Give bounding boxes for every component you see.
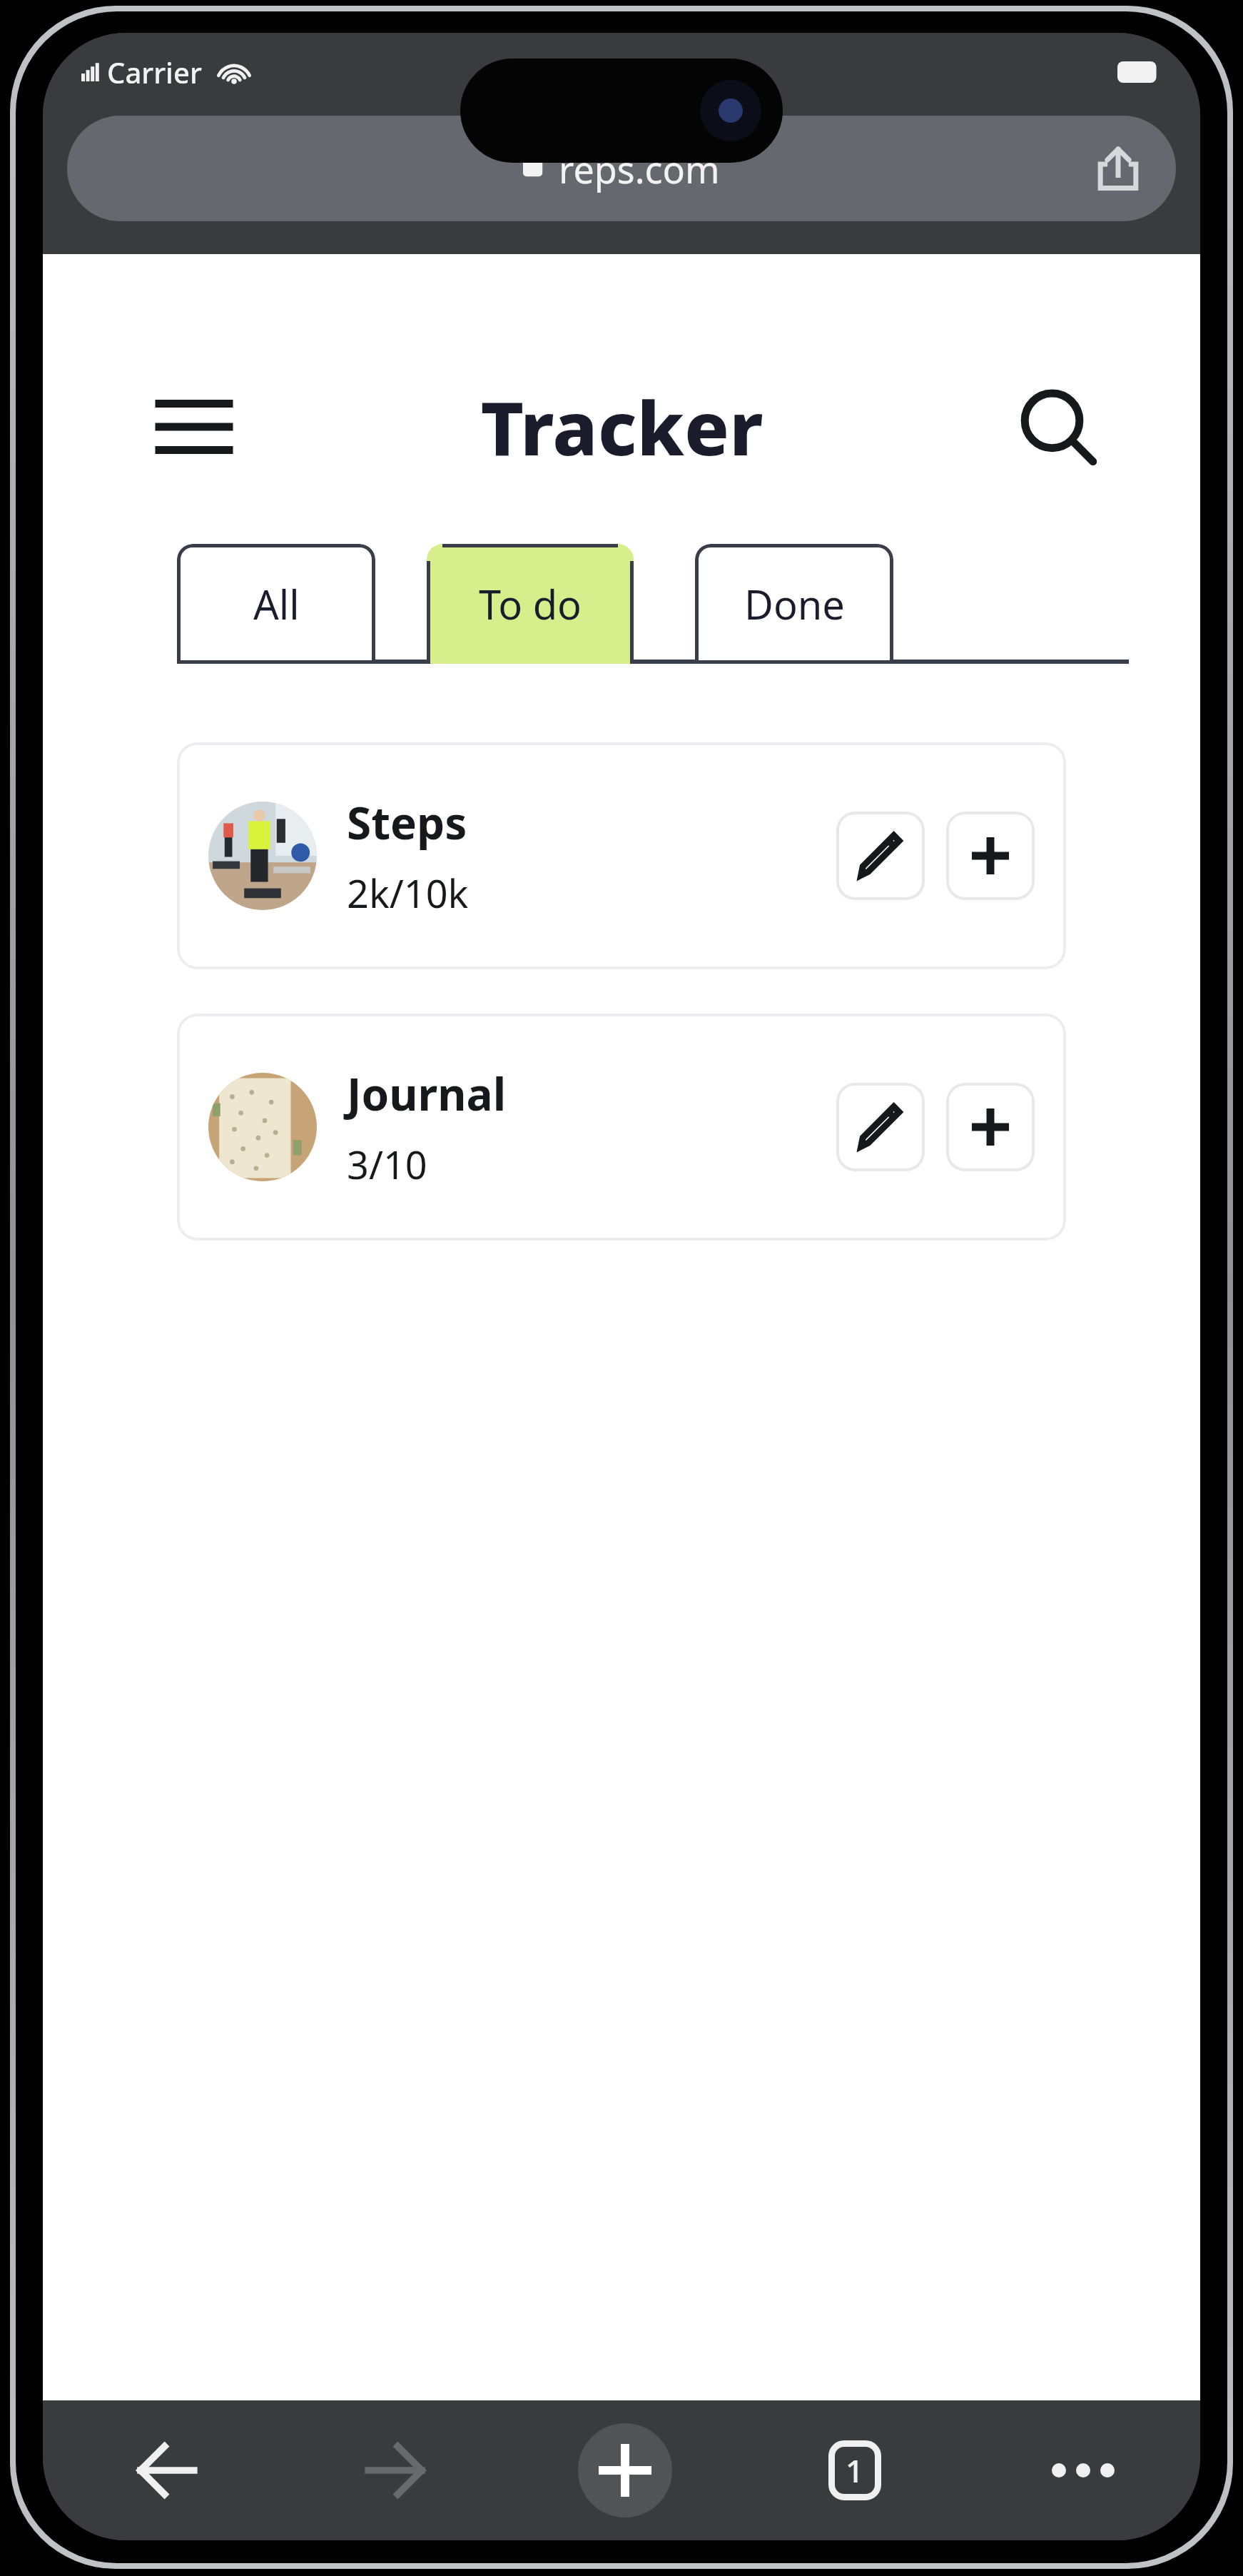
button[interactable]: Menu xyxy=(150,383,238,471)
button[interactable]: Edit xyxy=(836,812,925,900)
staticText: 3/10 xyxy=(347,1138,427,1191)
button[interactable]: Add xyxy=(946,1083,1035,1171)
staticText: reps.com xyxy=(559,143,720,194)
staticText: Done xyxy=(744,577,845,631)
button[interactable]: Share xyxy=(1086,136,1150,201)
staticText: 9:41 xyxy=(654,52,714,93)
button[interactable]: New tab xyxy=(578,2423,672,2517)
staticText: Tracker xyxy=(480,376,763,478)
button[interactable]: More xyxy=(1037,2425,1129,2516)
button[interactable]: All xyxy=(177,544,375,664)
staticText: 1 xyxy=(846,2449,864,2492)
staticText: To do xyxy=(479,577,582,631)
staticText: 2k/10k xyxy=(347,867,469,919)
staticText: All xyxy=(253,577,300,631)
button[interactable]: Done xyxy=(695,544,893,664)
button[interactable]: Forward xyxy=(350,2425,441,2516)
button[interactable]: Edit xyxy=(836,1083,925,1171)
button[interactable]: To do xyxy=(427,544,634,664)
staticText: Carrier xyxy=(107,53,202,91)
button[interactable]: Add xyxy=(946,812,1035,900)
button[interactable]: Journal xyxy=(177,1014,1066,1241)
button[interactable]: Tabs xyxy=(809,2425,900,2516)
button[interactable]: reps.com xyxy=(67,116,1176,221)
button[interactable]: Back xyxy=(121,2425,213,2516)
staticText: Journal xyxy=(347,1064,507,1123)
button[interactable]: Search xyxy=(1010,380,1103,473)
staticText: Steps xyxy=(347,792,467,852)
button[interactable]: Steps xyxy=(177,742,1066,969)
